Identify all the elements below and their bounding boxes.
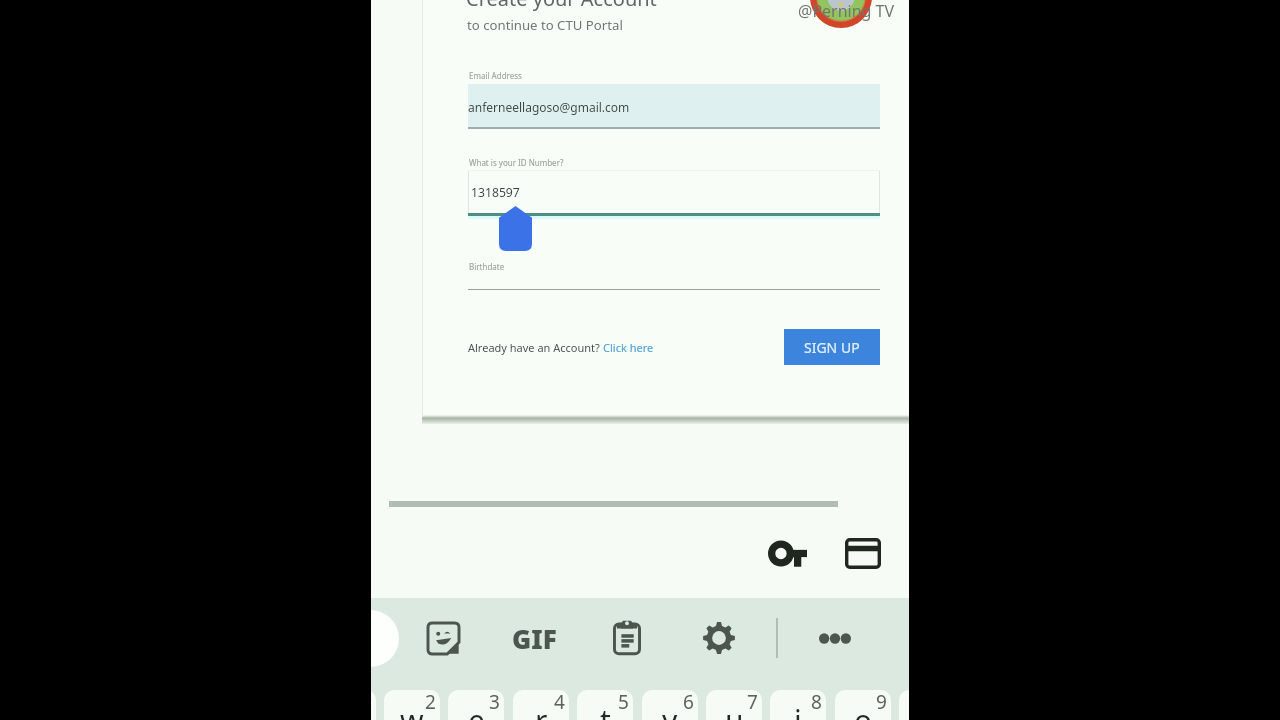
button[interactable]: More options xyxy=(813,616,857,660)
staticText: 8 xyxy=(811,690,822,715)
button[interactable]: 6 xyxy=(642,690,698,720)
staticText: 2 xyxy=(425,690,436,715)
staticText: 3 xyxy=(489,690,500,715)
button[interactable]: 8 xyxy=(770,690,826,720)
button[interactable]: Clipboard xyxy=(605,615,649,659)
staticText: Click here xyxy=(603,340,654,355)
button[interactable]: 1 xyxy=(371,690,376,720)
staticText: @Perning TV xyxy=(798,0,895,22)
button[interactable]: 5 xyxy=(577,690,633,720)
button[interactable]: Passwords xyxy=(765,531,809,575)
button[interactable]: 3 xyxy=(448,690,504,720)
button[interactable]: Payment methods xyxy=(841,531,885,575)
staticText: What is your ID Number? xyxy=(469,157,564,168)
staticText: u xyxy=(725,700,744,720)
staticText: 1318597 xyxy=(471,184,520,201)
button[interactable]: anferneellagoso@gmail.com xyxy=(468,84,880,127)
staticText: Birthdate xyxy=(469,261,505,272)
staticText: o xyxy=(854,700,873,720)
staticText: w xyxy=(400,700,424,720)
staticText: 4 xyxy=(554,690,565,715)
button[interactable]: 2 xyxy=(384,690,440,720)
button[interactable]: Settings xyxy=(697,616,741,660)
button[interactable]: Already have an Account? xyxy=(468,340,654,355)
button[interactable]: 0 xyxy=(899,690,909,720)
staticText: Create your Account xyxy=(466,0,657,12)
button[interactable]: Stickers xyxy=(421,616,465,660)
staticText: 1 xyxy=(371,690,372,715)
staticText: SIGN UP xyxy=(804,338,860,357)
staticText: GIF xyxy=(512,621,557,656)
staticText: r xyxy=(535,700,548,720)
button[interactable]: GIF xyxy=(503,616,565,660)
staticText: 6 xyxy=(683,690,694,715)
staticText: 9 xyxy=(876,690,887,715)
staticText: i xyxy=(794,700,802,720)
button[interactable]: SIGN UP xyxy=(784,329,880,365)
button[interactable]: 7 xyxy=(706,690,762,720)
staticText: e xyxy=(468,700,485,720)
staticText: Already have an Account? xyxy=(468,340,603,355)
staticText: 7 xyxy=(747,690,758,715)
staticText: anferneellagoso@gmail.com xyxy=(468,99,630,115)
button[interactable]: 1318597 xyxy=(468,170,880,213)
staticText: 5 xyxy=(618,690,629,715)
button[interactable]: 4 xyxy=(513,690,569,720)
staticText: t xyxy=(600,700,611,720)
staticText: y xyxy=(662,700,678,720)
button[interactable]: 9 xyxy=(835,690,891,720)
button[interactable]: Search xyxy=(371,610,399,667)
staticText: Email Address xyxy=(469,70,522,81)
staticText: to continue to CTU Portal xyxy=(467,16,623,34)
